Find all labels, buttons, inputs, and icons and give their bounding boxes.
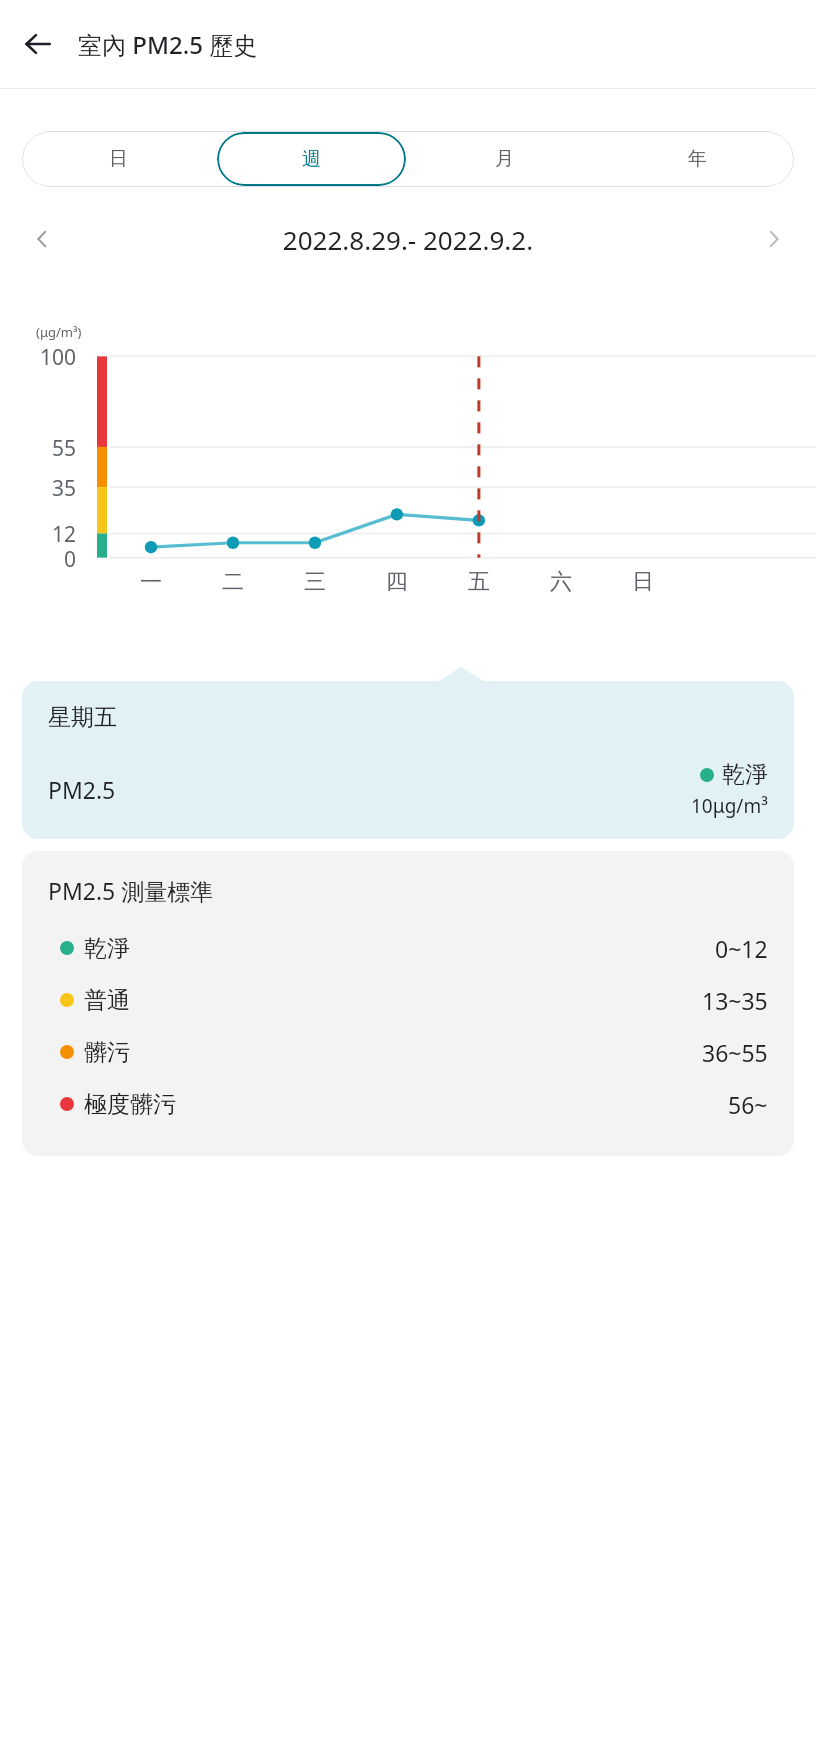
staticText: 星期五 bbox=[48, 703, 117, 732]
button[interactable]: PM2.5 測量標準 bbox=[22, 851, 794, 1156]
button[interactable]: 月 bbox=[410, 132, 599, 186]
staticText: 乾淨 bbox=[84, 934, 715, 963]
staticText: 月 bbox=[495, 147, 514, 171]
staticText: 極度髒污 bbox=[84, 1090, 728, 1119]
staticText: 日 bbox=[109, 147, 128, 171]
staticText: 三 bbox=[274, 568, 356, 596]
staticText: (μg/m³) bbox=[36, 323, 82, 341]
staticText: 四 bbox=[356, 568, 438, 596]
staticText: 二 bbox=[192, 568, 274, 596]
button[interactable]: Previous period bbox=[18, 215, 66, 263]
staticText: 六 bbox=[520, 568, 602, 596]
staticText: 12 bbox=[0, 520, 76, 549]
staticText: PM2.5 bbox=[48, 774, 691, 805]
staticText: 55 bbox=[0, 434, 76, 463]
button[interactable]: 星期五 bbox=[22, 681, 794, 839]
staticText: 年 bbox=[688, 147, 707, 171]
staticText: 0 bbox=[0, 545, 76, 574]
staticText: PM2.5 測量標準 bbox=[48, 875, 214, 906]
button[interactable]: Next period bbox=[750, 215, 798, 263]
staticText: 36~55 bbox=[702, 1037, 768, 1068]
staticText: 0~12 bbox=[715, 933, 768, 964]
staticText: 10μg/m³ bbox=[691, 793, 768, 819]
staticText: 2022.8.29.- 2022.9.2. bbox=[66, 222, 750, 257]
staticText: 髒污 bbox=[84, 1038, 702, 1067]
staticText: 13~35 bbox=[702, 985, 768, 1016]
button[interactable]: 年 bbox=[603, 132, 792, 186]
button[interactable]: Back bbox=[12, 18, 64, 70]
staticText: 一 bbox=[110, 568, 192, 596]
staticText: 乾淨 bbox=[722, 760, 768, 789]
staticText: 56~ bbox=[728, 1089, 768, 1120]
staticText: 日 bbox=[602, 568, 684, 596]
staticText: 100 bbox=[0, 343, 76, 372]
staticText: 35 bbox=[0, 474, 76, 503]
staticText: 室內 PM2.5 歷史 bbox=[78, 28, 258, 61]
staticText: 週 bbox=[302, 147, 321, 171]
button[interactable]: 週 bbox=[217, 132, 406, 186]
button[interactable]: 日 bbox=[24, 132, 213, 186]
staticText: 五 bbox=[438, 568, 520, 596]
staticText: 普通 bbox=[84, 986, 702, 1015]
